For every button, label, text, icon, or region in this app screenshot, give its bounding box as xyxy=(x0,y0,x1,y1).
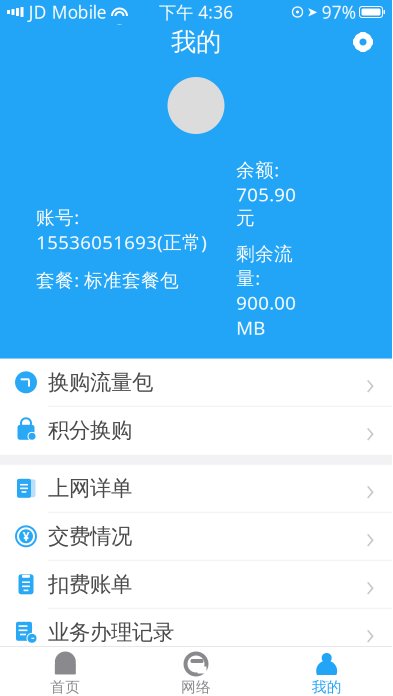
button[interactable]: 业务办理记录 xyxy=(0,609,392,657)
staticText: 上网详单 xyxy=(48,475,132,501)
staticText: 我的 xyxy=(171,26,221,57)
staticText: 剩余流量: 900.00MB xyxy=(236,242,296,340)
button[interactable]: 设置 xyxy=(341,22,385,62)
staticText: ¥ xyxy=(22,528,29,544)
staticText: › xyxy=(366,563,374,606)
button[interactable]: ¥ xyxy=(0,513,392,561)
staticText: › xyxy=(366,515,374,558)
button[interactable]: 我的 xyxy=(261,647,392,696)
button[interactable]: 积分换购 xyxy=(0,407,392,455)
staticText: 业务办理记录 xyxy=(48,619,174,645)
staticText: 下午 4:36 xyxy=(159,0,233,23)
button[interactable]: 网络 xyxy=(131,647,261,696)
staticText: › xyxy=(366,361,374,404)
button[interactable]: 换购赠送记录 xyxy=(0,657,392,696)
staticText: 换购流量包 xyxy=(48,369,153,395)
staticText: 我的 xyxy=(312,678,342,696)
button[interactable]: 首页 xyxy=(0,647,131,696)
staticText: ➤ xyxy=(306,4,317,19)
staticText: › xyxy=(366,611,374,654)
staticText: 套餐: 标准套餐包 xyxy=(36,267,179,292)
staticText: 换购赠送记录 xyxy=(48,667,174,693)
staticText: › xyxy=(366,467,374,510)
staticText: 账号: 15536051693(正常) xyxy=(36,205,207,254)
staticText: JD Mobile xyxy=(28,0,106,23)
staticText: 交费情况 xyxy=(48,523,132,549)
staticText: › xyxy=(366,409,374,452)
staticText: 扣费账单 xyxy=(48,571,132,597)
button[interactable]: 扣费账单 xyxy=(0,561,392,609)
staticText: 积分换购 xyxy=(48,417,132,443)
staticText: 97% xyxy=(321,0,355,23)
staticText: 余额: 705.90元 xyxy=(236,157,296,229)
button[interactable]: 换购流量包 xyxy=(0,359,392,407)
staticText: 网络 xyxy=(181,678,211,696)
button[interactable]: 上网详单 xyxy=(0,465,392,513)
staticText: 首页 xyxy=(50,678,80,696)
